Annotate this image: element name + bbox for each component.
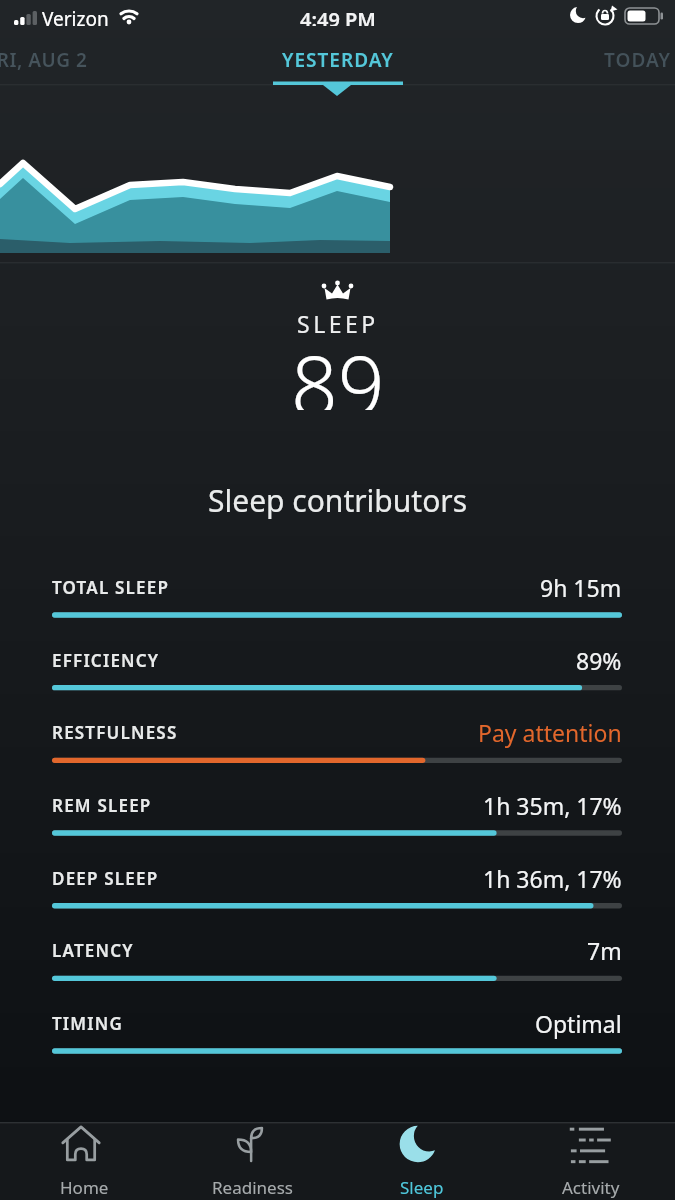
button[interactable]: Readiness <box>168 1122 337 1200</box>
button[interactable]: Home <box>0 1122 168 1200</box>
button[interactable]: TOTAL SLEEP <box>0 562 675 624</box>
staticText: TIMING <box>52 1012 124 1035</box>
button[interactable]: EFFICIENCY <box>0 635 675 697</box>
button[interactable]: Sleep <box>337 1122 506 1200</box>
staticText: REM SLEEP <box>52 794 152 817</box>
staticText: 1h 35m, 17% <box>483 790 622 821</box>
staticText: RESTFULNESS <box>52 721 178 744</box>
button[interactable]: REM SLEEP <box>0 780 675 842</box>
button[interactable]: TIMING <box>0 998 675 1060</box>
staticText: DEEP SLEEP <box>52 867 159 890</box>
button[interactable]: Activity <box>506 1122 675 1200</box>
staticText: Verizon <box>42 6 109 26</box>
button[interactable]: RESTFULNESS <box>0 707 675 769</box>
staticText: FRI, AUG 2 <box>0 47 88 73</box>
button[interactable]: YESTERDAY <box>282 44 394 76</box>
staticText: 89% <box>576 645 622 676</box>
staticText: TOTAL SLEEP <box>52 576 170 599</box>
staticText: LATENCY <box>52 939 134 962</box>
staticText: Optimal <box>535 1008 622 1039</box>
staticText: 1h 36m, 17% <box>483 863 622 894</box>
button[interactable]: FRI, AUG 2 <box>0 44 88 76</box>
staticText: Readiness <box>212 1176 293 1199</box>
staticText: SLEEP <box>297 308 379 336</box>
staticText: 4:49 PM <box>300 6 376 26</box>
button[interactable]: DEEP SLEEP <box>0 853 675 915</box>
staticText: YESTERDAY <box>282 47 394 73</box>
button[interactable]: LATENCY <box>0 925 675 987</box>
staticText: EFFICIENCY <box>52 649 160 672</box>
staticText: Sleep contributors <box>208 480 468 520</box>
staticText: TODAY <box>604 47 671 73</box>
staticText: 89 <box>291 328 385 410</box>
staticText: Home <box>60 1176 109 1199</box>
staticText: Activity <box>562 1176 620 1199</box>
staticText: Pay attention <box>478 717 622 748</box>
button[interactable]: TODAY <box>604 44 671 76</box>
staticText: 7m <box>587 935 622 966</box>
staticText: 9h 15m <box>540 572 622 603</box>
staticText: Sleep <box>400 1176 444 1199</box>
